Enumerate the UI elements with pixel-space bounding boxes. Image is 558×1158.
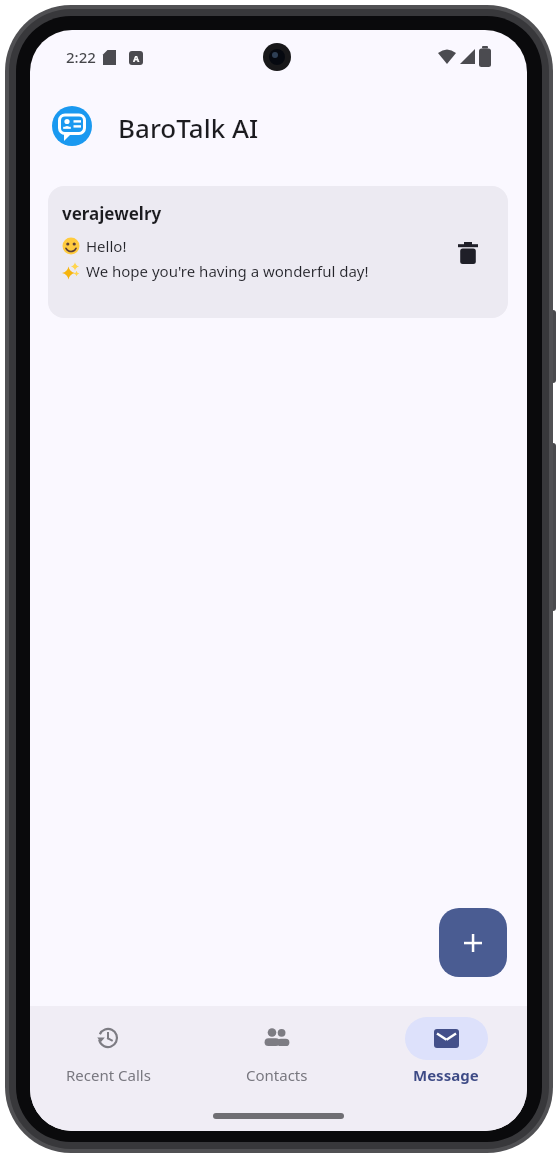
staticText: Recent Calls [66,1065,151,1085]
button[interactable]: Message [376,1011,516,1091]
button[interactable] [444,229,492,277]
staticText: Hello! [86,236,127,256]
staticText: We hope you're having a wonderful day! [86,261,369,281]
staticText: 2:22 [66,47,96,67]
button[interactable]: verajewelry [48,186,508,318]
staticText: Contacts [246,1065,308,1085]
button[interactable] [439,908,507,977]
staticText: BaroTalk AI [118,110,259,145]
staticText: verajewelry [62,202,162,225]
button[interactable]: Recent Calls [38,1011,178,1091]
staticText: Message [413,1065,479,1085]
staticText: A [133,52,140,64]
button[interactable]: Contacts [207,1011,347,1091]
